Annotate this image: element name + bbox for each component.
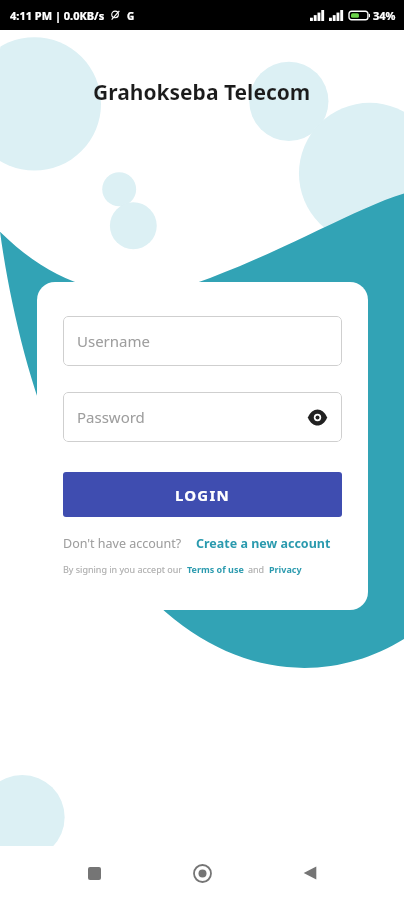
staticText: 4:11 PM | 0.0KB/s — [10, 8, 105, 23]
staticText: LOGIN — [175, 485, 230, 505]
staticText: By signing in you accept our — [63, 563, 183, 575]
button[interactable]: Password — [63, 392, 342, 442]
button[interactable]: Recent apps — [74, 853, 114, 893]
button[interactable]: Home — [182, 853, 222, 893]
button[interactable]: Back — [290, 853, 330, 893]
staticText: Don't have account? — [63, 535, 182, 552]
button[interactable]: Username — [63, 316, 342, 366]
button[interactable]: LOGIN — [63, 472, 342, 517]
button[interactable]: Create a new account — [196, 535, 331, 552]
button[interactable]: Show password — [302, 402, 332, 432]
staticText: Grahokseba Telecom — [93, 78, 311, 107]
staticText: Create a new account — [196, 535, 331, 552]
button[interactable]: Terms of use — [187, 563, 244, 575]
button[interactable]: Privacy — [269, 563, 302, 575]
staticText: and — [248, 563, 265, 575]
staticText: Terms of use — [187, 563, 244, 575]
staticText: Privacy — [269, 563, 302, 575]
staticText: Username — [77, 331, 150, 351]
staticText: G — [127, 9, 135, 23]
staticText: Password — [77, 407, 145, 427]
staticText: 34% — [373, 8, 396, 23]
